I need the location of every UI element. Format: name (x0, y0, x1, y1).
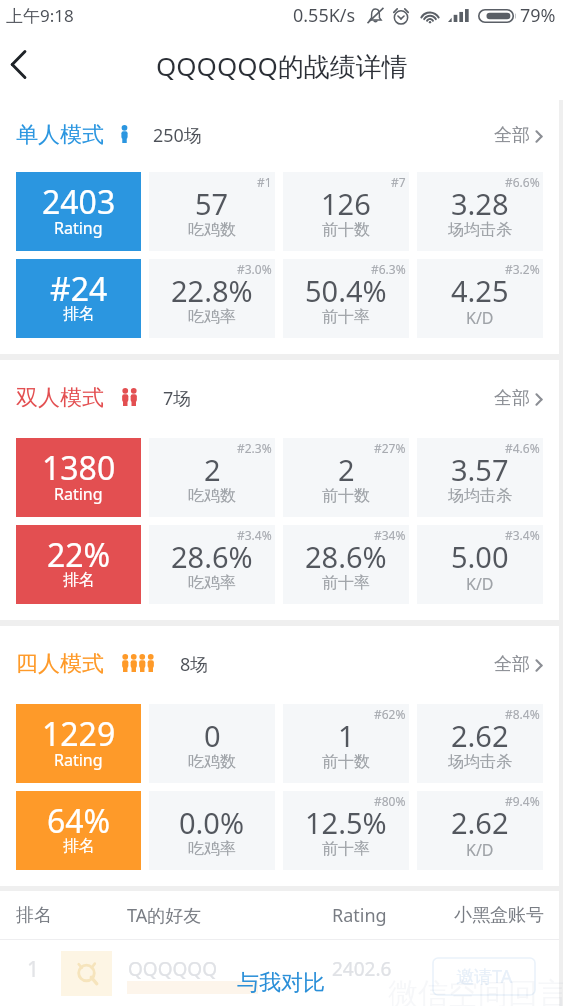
staticText: 22% (47, 533, 111, 577)
staticText: 0.55K/s (293, 3, 356, 28)
staticText: 50.4% (305, 271, 387, 310)
staticText: #3.4% (505, 527, 540, 543)
button[interactable]: #3.0% (149, 259, 275, 338)
staticText: QQQQQQ (128, 956, 218, 982)
button[interactable]: #27% (283, 438, 409, 517)
staticText: 排名 (63, 570, 95, 590)
button[interactable]: #9.4% (417, 791, 543, 870)
staticText: 全部 (494, 124, 530, 147)
staticText: #8.4% (505, 706, 540, 722)
staticText: 吃鸡数 (188, 220, 236, 240)
staticText: #9.4% (505, 793, 540, 809)
button[interactable]: 1 (0, 940, 559, 1006)
button[interactable]: #6.6% (417, 172, 543, 251)
staticText: 57 (195, 184, 229, 223)
staticText: 4.25 (451, 271, 509, 310)
staticText: QQQQQQ的战绩详情 (156, 48, 408, 84)
button[interactable]: 全部 (494, 388, 543, 411)
button[interactable]: #1 (149, 172, 275, 251)
button[interactable]: #7 (283, 172, 409, 251)
button[interactable]: 0 (149, 704, 275, 783)
button[interactable]: 1380 (16, 438, 141, 517)
staticText: 79% (520, 3, 556, 28)
button[interactable]: #6.3% (283, 259, 409, 338)
button[interactable]: 0.0% (149, 791, 275, 870)
staticText: 场均击杀 (448, 752, 512, 772)
staticText: 双人模式 (16, 384, 104, 412)
staticText: 3.28 (451, 184, 509, 223)
staticText: #1 (257, 174, 272, 190)
staticText: 吃鸡数 (188, 752, 236, 772)
staticText: 7场 (163, 386, 192, 411)
staticText: 64% (47, 799, 111, 843)
button[interactable]: #3.4% (149, 525, 275, 604)
button[interactable]: #8.4% (417, 704, 543, 783)
staticText: 场均击杀 (448, 220, 512, 240)
staticText: 2.62 (451, 716, 509, 755)
staticText: 2 (338, 450, 355, 489)
staticText: #80% (374, 793, 406, 809)
staticText: 排名 (63, 836, 95, 856)
button[interactable]: #3.4% (417, 525, 543, 604)
staticText: #3.4% (237, 527, 272, 543)
staticText: 2 (204, 450, 221, 489)
button[interactable]: #24 (16, 259, 141, 338)
staticText: 1 (27, 955, 40, 984)
staticText: #24 (50, 267, 108, 311)
button[interactable]: Back (0, 42, 40, 86)
staticText: 与我对比 (237, 969, 325, 997)
button[interactable]: 1229 (16, 704, 141, 783)
button[interactable]: #62% (283, 704, 409, 783)
button[interactable]: 64% (16, 791, 141, 870)
staticText: 1380 (42, 446, 116, 490)
staticText: #34% (374, 527, 406, 543)
staticText: 0.0% (179, 803, 245, 842)
staticText: #6.3% (371, 261, 406, 277)
staticText: 前十率 (322, 839, 370, 859)
button[interactable]: #80% (283, 791, 409, 870)
button[interactable]: 22% (16, 525, 141, 604)
staticText: K/D (466, 307, 494, 329)
staticText: 2403 (42, 180, 116, 224)
staticText: #27% (374, 440, 406, 456)
button[interactable]: #34% (283, 525, 409, 604)
button[interactable]: 全部 (494, 125, 543, 148)
staticText: #4.6% (505, 440, 540, 456)
staticText: 全部 (494, 387, 530, 410)
staticText: 邀请TA (456, 964, 513, 989)
button[interactable]: 邀请TA (433, 958, 535, 995)
staticText: #62% (374, 706, 406, 722)
staticText: #6.6% (505, 174, 540, 190)
staticText: 吃鸡率 (188, 307, 236, 327)
staticText: 上午9:18 (6, 4, 74, 27)
staticText: 8场 (180, 652, 209, 677)
staticText: 场均击杀 (448, 486, 512, 506)
staticText: 28.6% (305, 537, 387, 576)
staticText: TA的好友 (127, 903, 202, 928)
staticText: 前十数 (322, 220, 370, 240)
button[interactable]: #3.2% (417, 259, 543, 338)
staticText: 小黑盒账号 (454, 904, 544, 927)
staticText: Rating (54, 217, 103, 239)
button[interactable]: 全部 (494, 654, 543, 677)
staticText: 前十数 (322, 752, 370, 772)
staticText: 排名 (16, 904, 52, 927)
staticText: 3.57 (451, 450, 509, 489)
staticText: #2.3% (237, 440, 272, 456)
button[interactable]: #2.3% (149, 438, 275, 517)
staticText: 微信空间回言 (388, 975, 563, 1006)
staticText: 吃鸡率 (188, 573, 236, 593)
staticText: K/D (466, 573, 494, 595)
staticText: 前十数 (322, 486, 370, 506)
staticText: #7 (391, 174, 406, 190)
staticText: Rating (54, 483, 103, 505)
button[interactable]: #4.6% (417, 438, 543, 517)
button[interactable]: 2403 (16, 172, 141, 251)
staticText: 1229 (42, 712, 116, 756)
staticText: 全部 (494, 653, 530, 676)
staticText: 2402.6 (332, 956, 392, 982)
staticText: 吃鸡数 (188, 486, 236, 506)
staticText: Rating (332, 903, 387, 928)
staticText: 28.6% (171, 537, 253, 576)
staticText: 250场 (153, 123, 202, 148)
